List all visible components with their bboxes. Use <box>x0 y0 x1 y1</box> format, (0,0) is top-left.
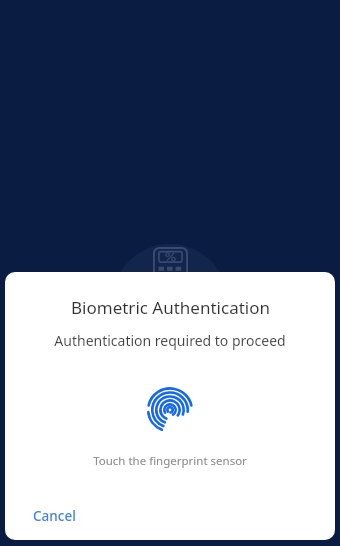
button[interactable]: Cancel <box>24 497 85 535</box>
staticText: Cancel <box>33 507 76 525</box>
staticText: Biometric Authentication <box>71 296 270 319</box>
staticText: Authentication required to proceed <box>54 331 286 350</box>
staticText: Touch the fingerprint sensor <box>93 453 247 469</box>
other: Fingerprint sensor <box>146 383 194 431</box>
